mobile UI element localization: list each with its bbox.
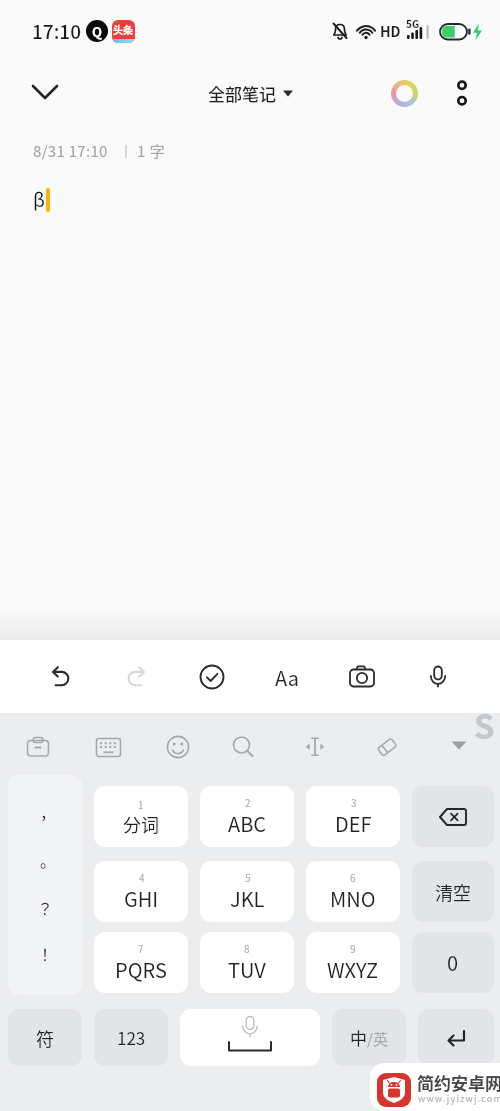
staticText: 5 xyxy=(245,870,251,884)
staticText: JKL xyxy=(230,884,265,913)
button[interactable]: 全部笔记 xyxy=(170,74,330,112)
staticText: ， xyxy=(40,800,57,823)
button[interactable]: 符 xyxy=(8,1009,82,1066)
staticText: 8/31 17:10 xyxy=(33,140,108,162)
button[interactable] xyxy=(364,724,410,770)
button[interactable]: 6 xyxy=(306,861,400,922)
button[interactable] xyxy=(8,775,82,995)
button[interactable] xyxy=(437,724,481,768)
staticText: 17:10 xyxy=(32,17,81,45)
staticText: 1 xyxy=(138,797,144,811)
staticText: www.jylzwj.com xyxy=(418,1092,500,1105)
button[interactable]: 2 xyxy=(200,786,294,847)
staticText: 2 xyxy=(245,795,251,809)
staticText: 4 xyxy=(139,870,145,884)
button[interactable] xyxy=(418,1009,494,1066)
button[interactable]: 3 xyxy=(306,786,400,847)
staticText: 9 xyxy=(350,941,356,955)
staticText: 中/英 xyxy=(350,1025,388,1050)
staticText: Q xyxy=(92,22,103,41)
staticText: Aa xyxy=(275,663,299,692)
staticText: 分词 xyxy=(123,811,159,837)
button[interactable]: 1 xyxy=(94,786,188,847)
staticText: 5G xyxy=(406,16,420,30)
button[interactable]: Aa xyxy=(265,655,309,699)
button[interactable] xyxy=(292,724,338,770)
button[interactable] xyxy=(442,73,482,113)
button[interactable]: 123 xyxy=(94,1009,168,1066)
staticText: ABC xyxy=(228,809,267,838)
button[interactable] xyxy=(155,724,201,770)
staticText: 123 xyxy=(117,1025,146,1050)
staticText: MNO xyxy=(330,884,376,913)
staticText: DEF xyxy=(335,809,372,838)
button[interactable]: 7 xyxy=(94,932,188,993)
button[interactable]: 4 xyxy=(94,861,188,922)
button[interactable]: 0 xyxy=(412,932,494,993)
button[interactable] xyxy=(340,655,384,699)
staticText: WXYZ xyxy=(327,955,379,984)
button[interactable]: 8 xyxy=(200,932,294,993)
button[interactable] xyxy=(85,724,131,770)
staticText: ！ xyxy=(37,942,54,965)
staticText: 6 xyxy=(350,870,356,884)
button[interactable] xyxy=(416,655,460,699)
button[interactable]: 9 xyxy=(306,932,400,993)
button[interactable] xyxy=(15,724,61,770)
staticText: 全部笔记 xyxy=(208,81,276,106)
staticText: 7 xyxy=(138,941,144,955)
staticText: 0 xyxy=(447,948,459,977)
button[interactable] xyxy=(190,655,234,699)
staticText: GHI xyxy=(124,884,159,913)
staticText: S xyxy=(474,701,495,749)
staticText: 3 xyxy=(351,795,357,809)
button[interactable] xyxy=(22,72,66,112)
staticText: β xyxy=(33,185,45,213)
staticText: 符 xyxy=(36,1025,54,1051)
staticText: 1 字 xyxy=(137,140,166,162)
staticText: TUV xyxy=(228,955,266,984)
button[interactable] xyxy=(412,786,494,847)
staticText: PQRS xyxy=(115,955,167,984)
button[interactable]: 5 xyxy=(200,861,294,922)
button[interactable]: 中/英 xyxy=(332,1009,406,1066)
button[interactable] xyxy=(115,655,159,699)
button[interactable] xyxy=(180,1009,320,1066)
staticText: HD xyxy=(380,21,401,41)
staticText: 8 xyxy=(244,941,250,955)
button[interactable] xyxy=(38,655,82,699)
staticText: 简约安卓网 xyxy=(417,1070,500,1095)
staticText: ？ xyxy=(37,896,54,919)
staticText: 头条 xyxy=(113,22,133,36)
staticText: 。 xyxy=(40,848,57,871)
staticText: 清空 xyxy=(435,879,471,905)
button[interactable]: 清空 xyxy=(412,861,494,922)
button[interactable] xyxy=(220,724,266,770)
button[interactable] xyxy=(384,73,424,113)
